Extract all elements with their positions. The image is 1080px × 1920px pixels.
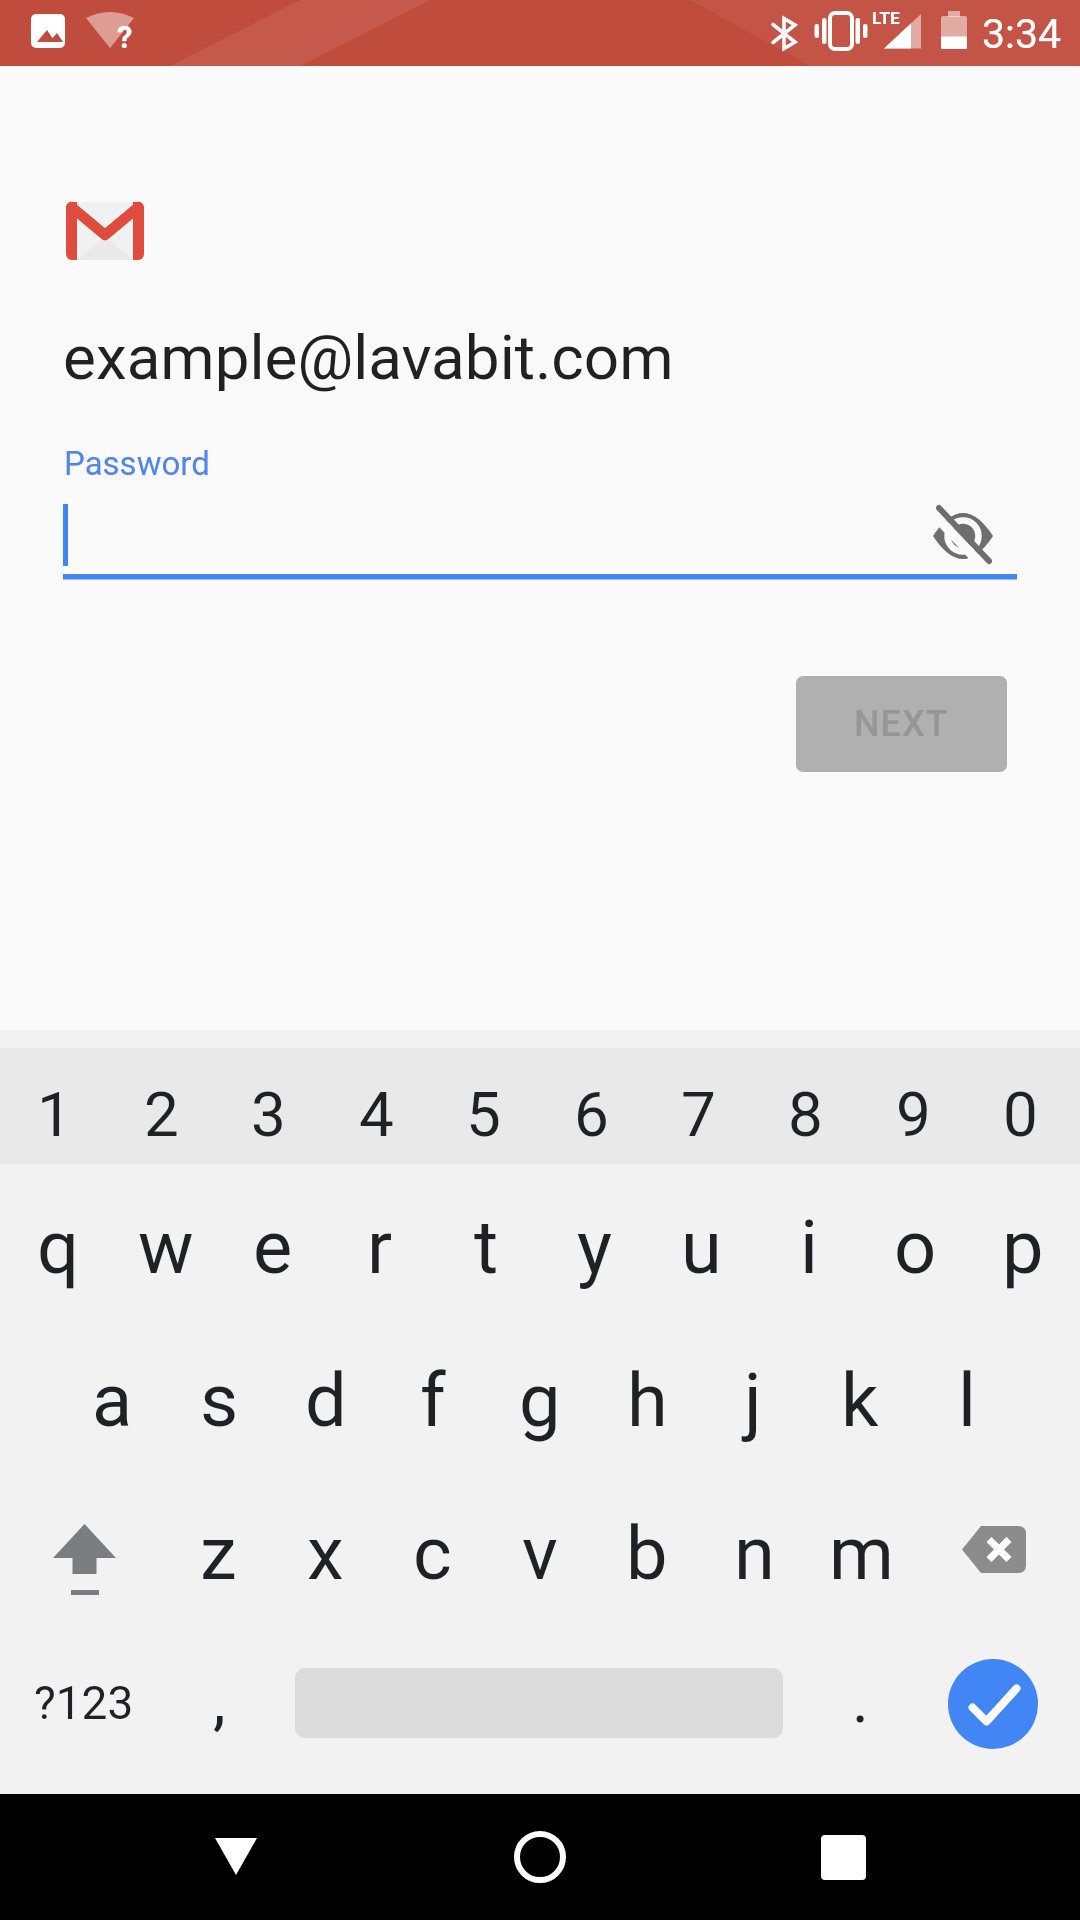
button[interactable]: 8 [752,1056,859,1172]
staticText: 4 [359,1078,394,1151]
button[interactable]: NEXT [796,676,1007,772]
button[interactable]: t [433,1173,540,1321]
button[interactable]: 5 [430,1056,537,1172]
staticText: p [1002,1204,1044,1291]
button[interactable]: m [808,1479,914,1627]
staticText: k [841,1357,879,1444]
button[interactable]: a [59,1326,165,1474]
staticText: 9 [896,1078,931,1151]
staticText: 5 [466,1078,501,1151]
button[interactable]: 6 [538,1056,645,1172]
staticText: i [800,1204,818,1291]
button[interactable]: 0 [967,1056,1074,1172]
staticText: 1 [37,1078,72,1151]
button[interactable]: 4 [323,1056,430,1172]
button[interactable]: , [169,1631,269,1771]
button[interactable]: n [701,1479,807,1627]
staticText: o [894,1204,937,1291]
button[interactable]: b [594,1479,700,1627]
button[interactable] [20,1480,150,1625]
button[interactable] [948,1659,1038,1749]
staticText: m [829,1510,894,1597]
staticText: n [734,1510,775,1597]
staticText: a [92,1357,133,1444]
button[interactable]: c [379,1479,485,1627]
staticText: v [522,1510,558,1597]
button[interactable]: g [487,1326,593,1474]
staticText: c [413,1510,452,1597]
staticText: l [958,1357,976,1444]
button[interactable]: o [862,1173,969,1321]
button[interactable]: e [219,1173,326,1321]
button[interactable]: z [165,1479,271,1627]
staticText: 7 [681,1078,716,1151]
staticText: example@lavabit.com [63,321,674,394]
button[interactable]: 1 [1,1056,108,1172]
button[interactable]: ?123 [9,1633,159,1773]
staticText: d [305,1357,347,1444]
button[interactable]: 2 [108,1056,215,1172]
staticText: ? [117,19,133,55]
button[interactable] [770,1800,915,1914]
button[interactable]: w [112,1173,219,1321]
staticText: ?123 [34,1676,134,1730]
staticText: Password [64,444,210,483]
staticText: w [138,1204,194,1291]
button[interactable]: p [969,1173,1076,1321]
button[interactable] [923,496,1003,576]
staticText: t [474,1204,499,1291]
staticText: 6 [574,1078,609,1151]
staticText: , [213,1664,226,1739]
staticText: 0 [1003,1078,1038,1151]
staticText: 3:34 [982,10,1062,58]
staticText: 2 [144,1078,179,1151]
button[interactable] [930,1480,1060,1625]
button[interactable]: 9 [860,1056,967,1172]
staticText: f [420,1357,446,1444]
staticText: b [626,1510,668,1597]
staticText: r [367,1204,393,1291]
button[interactable]: y [541,1173,648,1321]
button[interactable]: i [755,1173,862,1321]
button[interactable]: . [810,1630,910,1770]
button[interactable] [165,1800,310,1914]
button[interactable] [467,1800,612,1914]
staticText: 8 [788,1078,823,1151]
button[interactable]: k [807,1326,913,1474]
button[interactable]: 7 [645,1056,752,1172]
staticText: NEXT [854,703,949,745]
button[interactable] [63,490,1017,580]
staticText: 3 [251,1078,286,1151]
staticText: h [627,1357,668,1444]
button[interactable]: q [5,1173,112,1321]
staticText: x [307,1510,344,1597]
button[interactable]: v [487,1479,593,1627]
staticText: j [744,1357,762,1444]
staticText: g [519,1357,561,1444]
button[interactable]: d [273,1326,379,1474]
button[interactable]: 3 [215,1056,322,1172]
staticText: e [253,1204,293,1291]
staticText: s [200,1357,239,1444]
staticText: y [577,1204,613,1291]
staticText: u [681,1204,722,1291]
button[interactable]: r [326,1173,433,1321]
staticText: q [37,1204,80,1291]
button[interactable]: j [700,1326,806,1474]
button[interactable]: s [166,1326,272,1474]
staticText: . [852,1663,869,1738]
button[interactable]: l [914,1326,1020,1474]
staticText: LTE [872,8,900,28]
staticText: z [200,1510,237,1597]
button[interactable]: x [272,1479,378,1627]
button[interactable]: u [648,1173,755,1321]
button[interactable]: h [594,1326,700,1474]
button[interactable]: f [380,1326,486,1474]
